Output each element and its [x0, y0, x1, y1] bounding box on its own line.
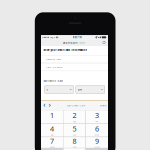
- staticText: Enter your credit card information: [43, 48, 87, 52]
- staticText: Name on card: [46, 57, 62, 61]
- button[interactable]: Scan Credit Card: [67, 104, 85, 107]
- button[interactable]: 8: [63, 137, 85, 148]
- button[interactable]: 2014: [76, 85, 105, 93]
- button[interactable]: Previous field: [43, 104, 46, 107]
- staticText: DEF: [95, 120, 98, 123]
- staticText: 3: [95, 110, 99, 120]
- button[interactable]: 6: [86, 124, 108, 137]
- staticText: Expiration date: [43, 79, 62, 82]
- button[interactable]: Next field: [48, 104, 51, 107]
- staticText: 5: [72, 124, 76, 133]
- staticText: amazon: [66, 41, 78, 44]
- button[interactable]: Done: [100, 104, 106, 107]
- button[interactable]: 3: [86, 110, 108, 123]
- staticText: 8: [72, 136, 76, 146]
- button[interactable]: Name on card: [41, 55, 108, 63]
- staticText: 6: [95, 124, 99, 133]
- staticText: 7: [50, 136, 54, 146]
- staticText: MNO: [94, 133, 99, 136]
- staticText: Scan Credit Card: [67, 104, 85, 107]
- staticText: TUV: [73, 146, 76, 148]
- staticText: 9: [95, 136, 99, 146]
- button[interactable]: Card number: [41, 63, 108, 71]
- staticText: .com: [78, 41, 85, 44]
- button[interactable]: Reload page: [102, 41, 106, 44]
- staticText: 01: [46, 88, 48, 91]
- button[interactable]: 01: [45, 85, 74, 93]
- staticText: 4:06 PM: [72, 36, 81, 39]
- button[interactable]: 4: [41, 124, 63, 137]
- staticText: AT&T: [50, 36, 55, 39]
- button[interactable]: 7: [41, 137, 63, 148]
- staticText: JKL: [73, 133, 76, 136]
- staticText: 2: [72, 110, 76, 120]
- staticText: WXYZ: [94, 146, 99, 148]
- staticText: 1: [50, 110, 54, 120]
- staticText: Card number: [46, 65, 63, 69]
- staticText: Done: [100, 104, 106, 107]
- staticText: 2014: [78, 88, 82, 91]
- staticText: ▶: [98, 36, 99, 38]
- button[interactable]: 2: [63, 110, 85, 123]
- staticText: 4: [50, 124, 54, 133]
- staticText: ABC: [73, 120, 76, 123]
- button[interactable]: 1: [41, 110, 63, 123]
- staticText: GHI: [50, 133, 53, 136]
- button[interactable]: 9: [86, 137, 108, 148]
- button[interactable]: 5: [63, 124, 85, 137]
- staticText: PQRS: [49, 146, 54, 148]
